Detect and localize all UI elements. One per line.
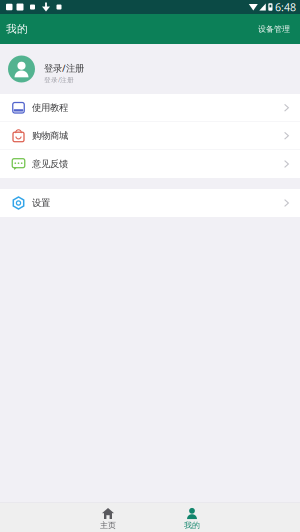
button[interactable]: 设备管理 (252, 17, 296, 41)
staticText: 使用教程 (32, 102, 68, 113)
staticText: 6:48 (275, 0, 296, 14)
button[interactable]: 意见反馈 (0, 150, 300, 178)
button[interactable]: 登录/注册 (0, 44, 300, 94)
button[interactable]: 主页 (81, 502, 135, 532)
staticText: 意见反馈 (32, 158, 68, 170)
button[interactable]: 购物商城 (0, 122, 300, 150)
staticText: 登录/注册 (44, 75, 74, 84)
button[interactable]: 使用教程 (0, 94, 300, 122)
staticText: 登录/注册 (44, 62, 84, 74)
button[interactable]: 我的 (165, 502, 219, 532)
staticText: 我的 (6, 22, 28, 35)
staticText: 设置 (32, 197, 50, 209)
staticText: 购物商城 (32, 130, 68, 141)
button[interactable]: 设置 (0, 189, 300, 217)
staticText: 设备管理 (258, 24, 290, 34)
staticText: 主页 (100, 520, 116, 530)
staticText: 我的 (184, 520, 200, 530)
